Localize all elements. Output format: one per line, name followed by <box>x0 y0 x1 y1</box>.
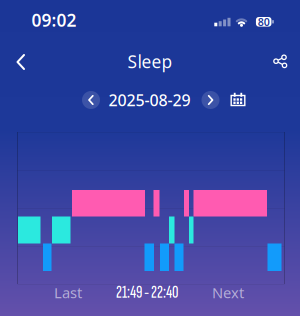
button[interactable]: Last <box>50 279 86 306</box>
staticText: Next <box>212 283 244 302</box>
button[interactable]: Next <box>208 279 248 306</box>
button[interactable]: Previous day <box>82 91 100 109</box>
staticText: Sleep <box>127 50 172 73</box>
button[interactable]: Share <box>267 49 293 75</box>
staticText: 21:49 - 22:40 <box>116 282 178 303</box>
button[interactable]: Calendar <box>229 91 247 109</box>
staticText: 80 <box>258 15 270 29</box>
staticText: 2025-08-29 <box>108 89 190 111</box>
staticText: Last <box>54 283 82 302</box>
staticText: 09:02 <box>31 8 76 31</box>
button[interactable]: Back <box>7 48 35 76</box>
button[interactable]: Next day <box>201 91 219 109</box>
